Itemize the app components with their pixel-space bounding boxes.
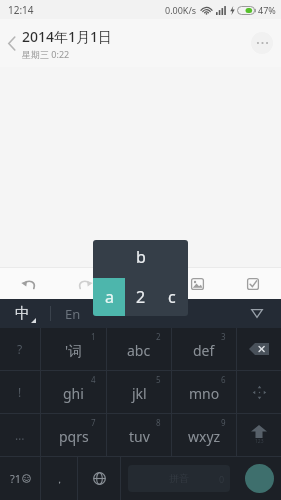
staticText: jkl: [132, 384, 147, 403]
button[interactable]: 2: [125, 278, 156, 316]
staticText: 4: [91, 374, 96, 385]
button[interactable]: En: [51, 299, 233, 328]
button[interactable]: Enter: [237, 457, 281, 500]
button[interactable]: Delete: [237, 328, 281, 370]
staticText: ghi: [63, 384, 84, 403]
button[interactable]: a: [93, 278, 125, 316]
button[interactable]: Insert image: [169, 268, 225, 299]
staticText: 123: [255, 438, 264, 445]
staticText: En: [65, 305, 81, 323]
staticText: 5: [156, 374, 161, 385]
staticText: 中: [15, 304, 30, 323]
button[interactable]: 6: [172, 371, 236, 413]
staticText: a: [105, 286, 114, 308]
button[interactable]: 5: [107, 371, 171, 413]
button[interactable]: c: [156, 278, 188, 316]
button[interactable]: Undo: [0, 268, 57, 299]
button[interactable]: Switch language: [78, 457, 120, 500]
button[interactable]: 9: [172, 414, 236, 456]
button[interactable]: Checklist: [225, 268, 281, 299]
staticText: 8: [156, 417, 161, 428]
button[interactable]: More options: [251, 32, 273, 54]
button[interactable]: Hide keyboard: [233, 299, 281, 328]
button[interactable]: Redo: [57, 268, 113, 299]
staticText: 6: [221, 374, 226, 385]
button[interactable]: 3: [172, 328, 236, 370]
staticText: ?1: [10, 471, 22, 486]
staticText: 9: [221, 417, 226, 428]
staticText: abc: [127, 341, 151, 360]
staticText: 1: [91, 331, 96, 342]
staticText: 拼音: [169, 472, 189, 485]
staticText: …: [15, 427, 25, 443]
button[interactable]: 2: [107, 328, 171, 370]
button[interactable]: ?: [0, 328, 40, 370]
staticText: pqrs: [59, 427, 89, 446]
staticText: tuv: [129, 427, 150, 446]
staticText: !: [18, 384, 22, 400]
staticText: 星期三 0:22: [22, 48, 70, 60]
button[interactable]: !: [0, 371, 40, 413]
staticText: b: [136, 246, 146, 268]
staticText: ?: [17, 341, 23, 357]
button[interactable]: 4: [41, 371, 106, 413]
button[interactable]: Back: [1, 32, 23, 54]
staticText: 47%: [258, 4, 276, 16]
button[interactable]: 中: [0, 299, 50, 328]
button[interactable]: Move cursor: [237, 371, 281, 413]
staticText: 0.00K/s: [165, 4, 197, 16]
staticText: 3: [221, 331, 226, 342]
staticText: def: [193, 341, 215, 360]
staticText: ，: [54, 472, 65, 486]
button[interactable]: 8: [107, 414, 171, 456]
staticText: 2014年1月1日: [22, 27, 113, 46]
staticText: 2: [136, 286, 146, 308]
staticText: 12:14: [8, 3, 34, 17]
button[interactable]: 1: [41, 328, 106, 370]
button[interactable]: ，: [41, 457, 77, 500]
staticText: 2: [156, 331, 161, 342]
button[interactable]: 7: [41, 414, 106, 456]
staticText: 7: [91, 417, 96, 428]
staticText: 0: [219, 473, 225, 485]
button[interactable]: Shift: [237, 414, 281, 456]
staticText: c: [168, 286, 176, 308]
staticText: wxyz: [188, 427, 221, 446]
staticText: '词: [65, 341, 83, 360]
staticText: mno: [189, 384, 220, 403]
button[interactable]: Voice input: [113, 268, 169, 299]
button[interactable]: ?1: [0, 457, 40, 500]
